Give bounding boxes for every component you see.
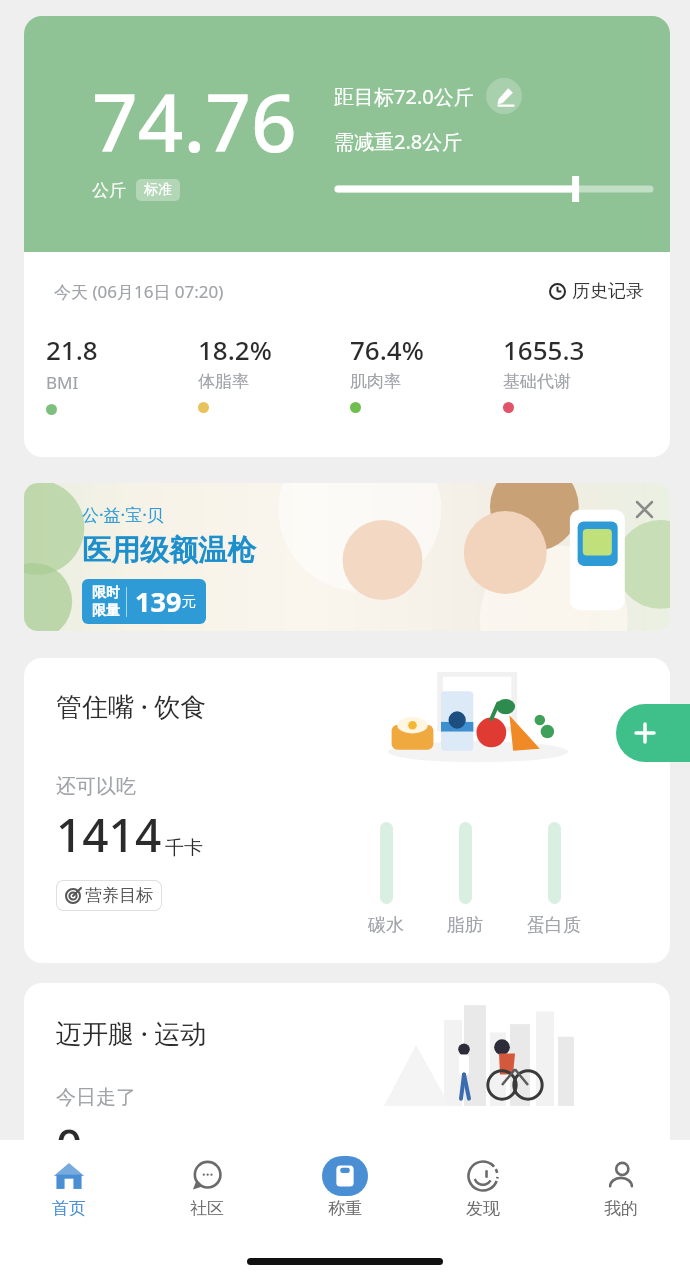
staticText: 发现	[466, 1198, 500, 1219]
staticText: 需减重2.8公斤	[334, 128, 463, 155]
button[interactable]: 21.8	[46, 332, 198, 415]
staticText: BMI	[46, 371, 79, 394]
button[interactable]: 我的	[552, 1154, 690, 1221]
staticText: 脂肪	[447, 914, 483, 937]
staticText: 体脂率	[198, 371, 249, 392]
staticText: 1414	[56, 803, 162, 866]
staticText: 管住嘴 · 饮食	[56, 688, 207, 724]
staticText: 肌肉率	[350, 371, 401, 392]
staticText: 标准	[144, 181, 172, 199]
staticText: 首页	[52, 1198, 86, 1219]
staticText: 1655.3	[503, 332, 585, 367]
button[interactable]: 管住嘴 · 饮食	[24, 658, 670, 963]
staticText: 我的	[604, 1198, 638, 1219]
staticText: 还可以吃	[56, 774, 136, 799]
button[interactable]: 称重	[276, 1154, 414, 1221]
staticText: 营养目标	[85, 885, 153, 906]
staticText: 公·益·宝·贝	[82, 503, 164, 526]
button[interactable]: 历史记录	[549, 280, 644, 303]
button[interactable]: 首页	[0, 1154, 138, 1221]
button[interactable]: 发现	[414, 1154, 552, 1221]
staticText: 21.8	[46, 332, 98, 367]
staticText: 迈开腿 · 运动	[56, 1015, 207, 1051]
staticText: 今天 (06月16日 07:20)	[54, 280, 224, 303]
button[interactable]: 1655.3	[503, 332, 656, 413]
staticText: 千卡	[165, 836, 203, 860]
staticText: 基础代谢	[503, 371, 571, 392]
staticText: 18.2%	[198, 332, 272, 367]
button[interactable]: 迈开腿 · 运动	[24, 983, 670, 1203]
staticText: 公斤	[92, 180, 126, 201]
staticText: 碳水	[368, 914, 404, 937]
staticText: 76.4%	[350, 332, 424, 367]
button[interactable]: 76.4%	[350, 332, 503, 413]
staticText: 称重	[328, 1198, 362, 1219]
button[interactable]: 公·益·宝·贝	[24, 483, 670, 631]
button[interactable]: 编辑目标	[486, 78, 522, 114]
button[interactable]: 74.76	[24, 16, 670, 252]
button[interactable]: 营养目标	[65, 885, 153, 906]
staticText: 限时	[92, 584, 120, 602]
staticText: 74.76	[92, 66, 297, 175]
button[interactable]: 18.2%	[198, 332, 350, 413]
staticText: 限量	[92, 602, 120, 620]
staticText: 医用级额温枪	[82, 532, 256, 569]
staticText: 0	[56, 1114, 83, 1177]
button[interactable]: 社区	[138, 1154, 276, 1221]
staticText: 139	[135, 583, 182, 620]
button[interactable]: 添加饮食	[616, 704, 690, 762]
staticText: 蛋白质	[527, 914, 581, 937]
staticText: 距目标72.0公斤	[334, 83, 474, 110]
staticText: 社区	[190, 1198, 224, 1219]
staticText: 今日走了	[56, 1085, 136, 1110]
button[interactable]: 关闭广告	[630, 495, 658, 523]
staticText: 元	[182, 593, 196, 611]
staticText: 历史记录	[572, 280, 644, 303]
